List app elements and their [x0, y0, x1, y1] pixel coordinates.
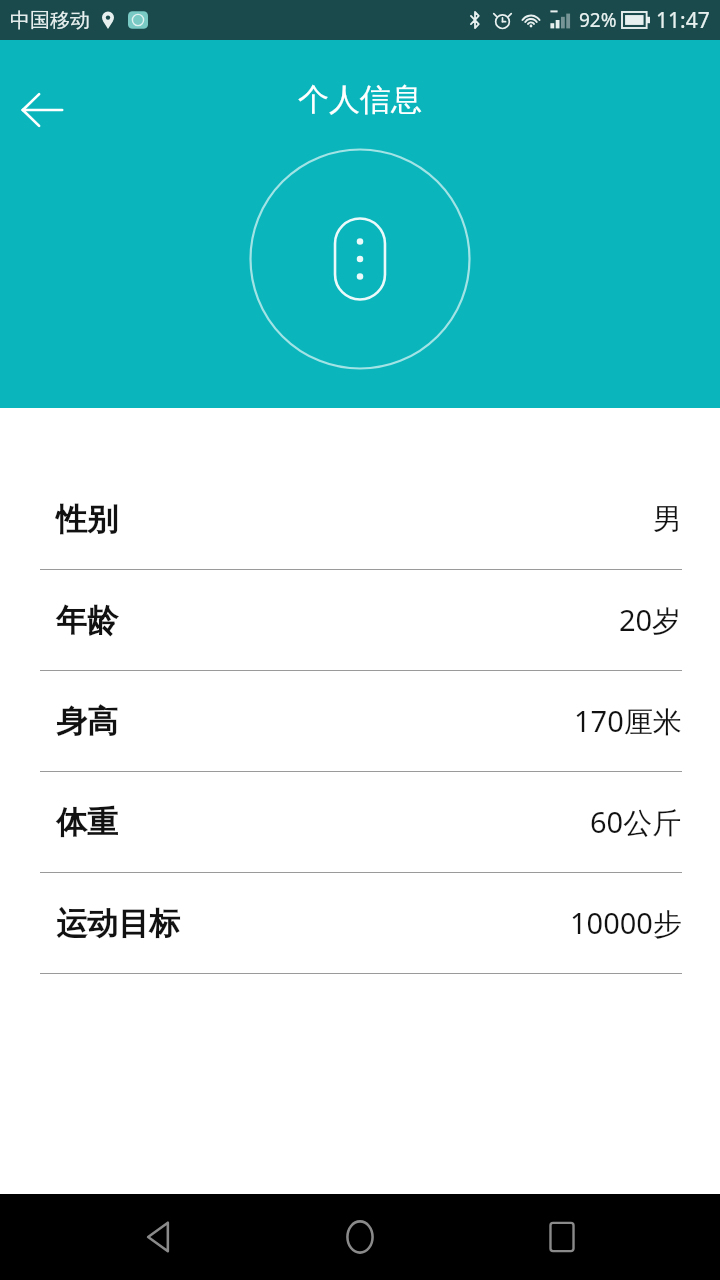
- button[interactable]: 年龄: [0, 570, 720, 670]
- staticText: 年龄: [56, 601, 118, 640]
- button[interactable]: Recent apps: [519, 1194, 605, 1280]
- staticText: 60公斤: [590, 802, 682, 842]
- staticText: 92%: [579, 7, 617, 33]
- staticText: 10000步: [570, 903, 682, 943]
- staticText: 中国移动: [10, 8, 90, 33]
- staticText: 男: [653, 501, 682, 538]
- button[interactable]: Avatar: [249, 148, 471, 370]
- button[interactable]: Back: [10, 78, 74, 142]
- staticText: 20岁: [619, 600, 682, 640]
- button[interactable]: Home: [317, 1194, 403, 1280]
- staticText: 运动目标: [56, 904, 180, 943]
- staticText: 性别: [56, 500, 118, 539]
- staticText: 11:47: [656, 6, 710, 35]
- button[interactable]: 运动目标: [0, 873, 720, 973]
- staticText: 身高: [56, 702, 118, 741]
- button[interactable]: 性别: [0, 469, 720, 569]
- staticText: 个人信息: [298, 80, 422, 119]
- staticText: 体重: [56, 803, 118, 842]
- button[interactable]: 体重: [0, 772, 720, 872]
- button[interactable]: Back: [116, 1194, 202, 1280]
- staticText: 170厘米: [574, 701, 682, 741]
- button[interactable]: 身高: [0, 671, 720, 771]
